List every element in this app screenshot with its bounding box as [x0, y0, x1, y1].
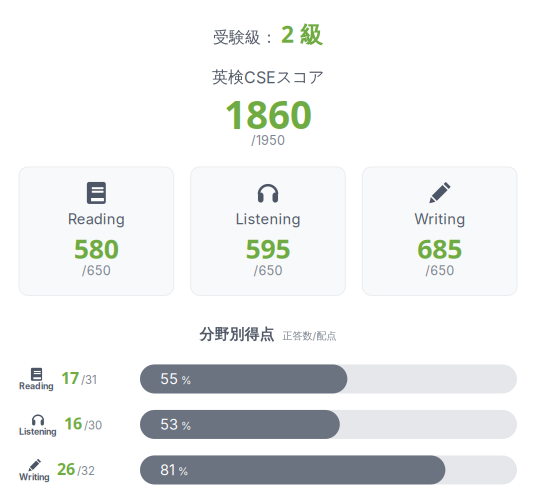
staticText: % — [181, 374, 191, 387]
staticText: Listening — [235, 210, 300, 228]
staticText: Reading — [19, 381, 54, 391]
staticText: /1950 — [251, 133, 285, 148]
staticText: /650 — [82, 263, 111, 278]
staticText: 685 — [417, 231, 462, 266]
staticText: 55 — [160, 370, 178, 388]
staticText: 1860 — [224, 88, 312, 140]
staticText: 595 — [245, 231, 290, 266]
staticText: /31 — [81, 373, 97, 387]
staticText: Listening — [19, 426, 57, 437]
button[interactable]: Reading — [0, 364, 536, 393]
button[interactable]: Listening — [0, 410, 536, 439]
staticText: 英検CSEスコア — [212, 67, 324, 87]
staticText: Writing — [19, 472, 50, 482]
staticText: 17 — [61, 367, 79, 388]
button[interactable]: Listening — [191, 167, 345, 295]
staticText: 分野別得点 — [199, 325, 274, 343]
staticText: 53 — [160, 416, 178, 433]
staticText: 580 — [74, 231, 119, 266]
staticText: 2 級 — [281, 19, 323, 49]
staticText: /650 — [253, 263, 282, 278]
staticText: /32 — [77, 464, 95, 478]
button[interactable]: Writing — [362, 167, 517, 295]
staticText: % — [181, 419, 191, 432]
staticText: 受験級： — [213, 27, 277, 48]
staticText: % — [178, 465, 188, 478]
staticText: Reading — [68, 210, 125, 228]
staticText: /650 — [425, 263, 454, 278]
button[interactable]: Reading — [19, 167, 174, 295]
staticText: 16 — [64, 413, 82, 434]
staticText: Writing — [414, 210, 465, 228]
staticText: /30 — [84, 418, 102, 432]
button[interactable]: Writing — [0, 455, 536, 484]
staticText: 26 — [57, 458, 75, 479]
staticText: 81 — [160, 461, 175, 479]
staticText: 正答数/配点 — [282, 330, 336, 342]
